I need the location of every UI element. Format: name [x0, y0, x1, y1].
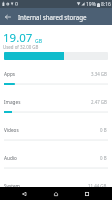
button[interactable]: Home: [43, 187, 69, 200]
staticText: 19.07: [3, 30, 33, 46]
staticText: 8:16: [101, 1, 111, 8]
staticText: Audio: [4, 155, 17, 161]
staticText: 3.34 GB: [91, 71, 107, 77]
staticText: Used of 32.00 GB: [3, 44, 39, 50]
button[interactable]: Back: [11, 187, 37, 200]
staticText: 0 B: [100, 127, 107, 133]
button[interactable]: Images: [0, 88, 112, 116]
button[interactable]: Back: [0, 8, 16, 25]
button[interactable]: Recent apps: [74, 187, 100, 200]
button[interactable]: System: [0, 172, 112, 200]
staticText: 2.47 GB: [91, 99, 107, 105]
button[interactable]: Audio: [0, 144, 112, 172]
staticText: 0 B: [100, 155, 107, 161]
button[interactable]: Videos: [0, 116, 112, 144]
button[interactable]: Apps: [0, 60, 112, 88]
staticText: GB: [35, 38, 42, 45]
staticText: Internal shared storage: [18, 13, 87, 21]
staticText: System: [4, 183, 20, 189]
staticText: Apps: [4, 71, 16, 77]
staticText: 11.44 GB: [88, 183, 107, 189]
staticText: 19%: [86, 1, 96, 8]
staticText: Videos: [4, 127, 19, 133]
staticText: Images: [4, 99, 21, 105]
